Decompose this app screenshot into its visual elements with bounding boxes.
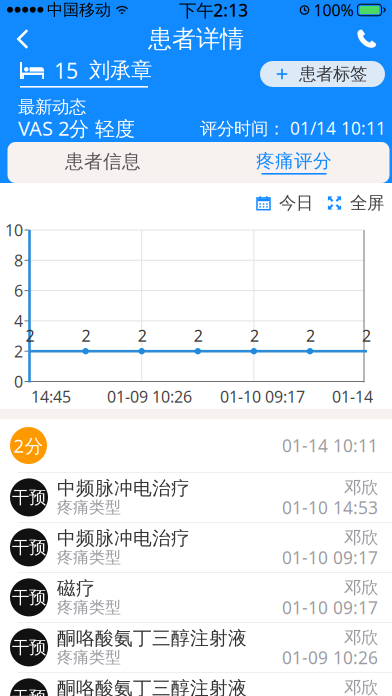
staticText: 酮咯酸氨丁三醇注射液: [57, 627, 247, 650]
staticText: 干预: [12, 687, 46, 696]
staticText: 最新动态: [18, 96, 86, 118]
staticText: 0: [14, 371, 23, 392]
button[interactable]: 干预: [0, 522, 392, 572]
staticText: 01-10 09:17: [282, 596, 378, 619]
staticText: 8: [14, 250, 23, 271]
staticText: 酮咯酸氨丁三醇注射液: [57, 677, 247, 696]
staticText: 100%: [313, 0, 353, 21]
staticText: 下午2:13: [179, 0, 248, 21]
staticText: 患者信息: [65, 150, 141, 173]
staticText: 01-14 10:11: [282, 434, 378, 457]
button[interactable]: 干预: [0, 472, 392, 522]
staticText: 中频脉冲电治疗: [57, 477, 190, 500]
staticText: 2: [306, 325, 315, 346]
button[interactable]: 患者信息: [7, 142, 198, 183]
staticText: 邓欣: [344, 627, 378, 648]
button[interactable]: 今日: [256, 191, 313, 215]
staticText: VAS 2分 轻度: [18, 115, 135, 141]
staticText: 2: [14, 341, 23, 362]
staticText: 疼痛类型: [57, 648, 121, 667]
staticText: 01-10 14:53: [282, 496, 378, 519]
staticText: 患者详情: [148, 24, 244, 54]
staticText: 患者标签: [299, 63, 367, 85]
staticText: 干预: [12, 587, 46, 608]
staticText: 中国移动: [47, 0, 111, 20]
staticText: 今日: [279, 192, 313, 214]
staticText: 01-14: [332, 386, 373, 407]
staticText: 邓欣: [344, 577, 378, 598]
staticText: 疼痛类型: [57, 598, 121, 617]
button[interactable]: 全屏: [313, 191, 384, 215]
staticText: 2: [250, 325, 259, 346]
button[interactable]: 患者标签: [260, 61, 385, 87]
staticText: 疼痛类型: [57, 498, 121, 517]
button[interactable]: 干预: [0, 622, 392, 672]
staticText: 10: [5, 219, 23, 241]
staticText: 评分时间： 01/14 10:11: [200, 117, 386, 140]
staticText: 邓欣: [344, 477, 378, 498]
button[interactable]: 干预: [0, 672, 392, 696]
staticText: 邓欣: [344, 677, 378, 696]
staticText: 15: [54, 56, 78, 85]
staticText: 01-09 10:26: [282, 646, 378, 669]
staticText: 2: [82, 325, 91, 346]
staticText: 干预: [12, 487, 46, 508]
staticText: 疼痛类型: [57, 548, 121, 567]
staticText: 干预: [12, 637, 46, 658]
button[interactable]: Back: [0, 20, 46, 58]
staticText: 中频脉冲电治疗: [57, 527, 190, 550]
staticText: 邓欣: [344, 527, 378, 548]
staticText: 2分: [13, 433, 43, 458]
staticText: 2: [362, 325, 371, 346]
staticText: 2: [25, 325, 34, 346]
button[interactable]: Call: [347, 20, 387, 58]
button[interactable]: 干预: [0, 572, 392, 622]
staticText: 6: [14, 280, 23, 301]
staticText: 01-10 09:17: [282, 546, 378, 569]
staticText: 01-10 09:17: [220, 386, 305, 407]
staticText: 磁疗: [57, 577, 95, 600]
staticText: 2: [138, 325, 147, 346]
staticText: 01-09 10:26: [107, 386, 192, 407]
staticText: 2: [194, 325, 203, 346]
staticText: 全屏: [350, 192, 384, 214]
staticText: 刘承章: [89, 57, 152, 84]
staticText: 14:45: [31, 386, 71, 407]
staticText: 疼痛评分: [256, 149, 332, 172]
staticText: 4: [14, 310, 23, 331]
staticText: 干预: [12, 537, 46, 558]
button[interactable]: 疼痛评分: [198, 142, 389, 183]
